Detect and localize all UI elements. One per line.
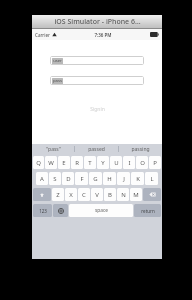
- staticText: M: [133, 191, 139, 199]
- staticText: "pass": [46, 146, 61, 153]
- staticText: 7:36 PM: [94, 32, 112, 38]
- button[interactable]: B: [104, 188, 116, 201]
- staticText: U: [114, 159, 119, 167]
- button[interactable]: Q: [33, 156, 44, 169]
- button[interactable]: I: [123, 156, 135, 169]
- button[interactable]: "pass": [32, 144, 74, 154]
- button[interactable]: L: [145, 172, 158, 185]
- staticText: K: [136, 175, 140, 183]
- staticText: D: [66, 175, 71, 183]
- staticText: O: [140, 159, 145, 167]
- button[interactable]: Shift: [33, 188, 51, 201]
- button[interactable]: space: [69, 204, 133, 217]
- staticText: pass: [53, 78, 62, 84]
- staticText: C: [82, 191, 86, 199]
- staticText: F: [80, 175, 84, 183]
- button[interactable]: Emoji keyboard: [53, 204, 68, 217]
- button[interactable]: U: [110, 156, 122, 169]
- button[interactable]: S: [49, 172, 61, 185]
- staticText: A: [40, 175, 44, 183]
- button[interactable]: H: [103, 172, 116, 185]
- staticText: Q: [36, 159, 41, 167]
- staticText: E: [62, 159, 66, 167]
- button[interactable]: M: [130, 188, 142, 201]
- staticText: 123: [39, 208, 47, 214]
- button[interactable]: T: [84, 156, 96, 169]
- button[interactable]: Z: [52, 188, 64, 201]
- button[interactable]: Signin: [32, 103, 162, 115]
- staticText: space: [95, 207, 108, 214]
- button[interactable]: X: [65, 188, 77, 201]
- staticText: W: [48, 159, 54, 167]
- staticText: G: [93, 175, 98, 183]
- button[interactable]: K: [131, 172, 144, 185]
- button[interactable]: pass: [50, 76, 144, 85]
- staticText: Signin: [90, 106, 105, 113]
- staticText: Z: [56, 191, 60, 199]
- staticText: L: [150, 175, 154, 183]
- staticText: user: [53, 58, 62, 64]
- button[interactable]: passed: [75, 144, 118, 154]
- staticText: X: [69, 191, 73, 199]
- button[interactable]: user: [50, 56, 144, 65]
- button[interactable]: P: [149, 156, 161, 169]
- button[interactable]: J: [117, 172, 130, 185]
- staticText: passed: [88, 146, 105, 153]
- button[interactable]: Y: [97, 156, 109, 169]
- button[interactable]: E: [58, 156, 70, 169]
- button[interactable]: D: [62, 172, 74, 185]
- staticText: Carrier: [35, 32, 50, 38]
- staticText: J: [123, 175, 125, 183]
- button[interactable]: Backspace: [143, 188, 161, 201]
- button[interactable]: 123: [33, 204, 52, 217]
- button[interactable]: F: [75, 172, 88, 185]
- staticText: V: [95, 191, 99, 199]
- button[interactable]: O: [136, 156, 148, 169]
- staticText: H: [107, 175, 112, 183]
- staticText: passing: [131, 146, 150, 153]
- button[interactable]: R: [71, 156, 83, 169]
- staticText: I: [128, 159, 131, 167]
- staticText: P: [153, 159, 157, 167]
- staticText: N: [121, 191, 126, 199]
- button[interactable]: passing: [119, 144, 162, 154]
- staticText: S: [53, 175, 57, 183]
- staticText: iOS Simulator - iPhone 6…: [54, 17, 141, 27]
- staticText: R: [75, 159, 79, 167]
- staticText: B: [108, 191, 112, 199]
- button[interactable]: V: [91, 188, 103, 201]
- button[interactable]: C: [78, 188, 90, 201]
- button[interactable]: N: [117, 188, 129, 201]
- staticText: return: [141, 208, 155, 214]
- button[interactable]: A: [36, 172, 48, 185]
- button[interactable]: G: [89, 172, 102, 185]
- button[interactable]: W: [45, 156, 57, 169]
- staticText: T: [88, 159, 92, 167]
- button[interactable]: return: [134, 204, 161, 217]
- staticText: Y: [101, 159, 105, 167]
